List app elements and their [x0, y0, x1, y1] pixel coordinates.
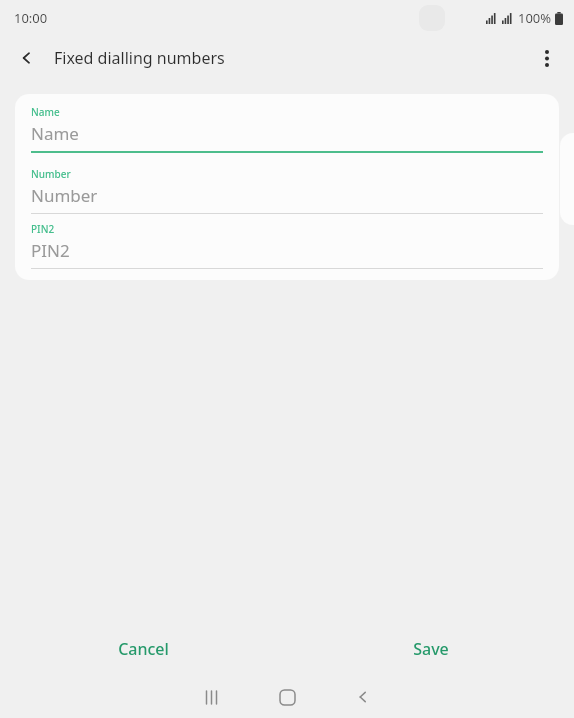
staticText: Cancel	[118, 638, 169, 660]
staticText: Name	[31, 122, 79, 145]
button[interactable]: Back	[8, 39, 46, 77]
button[interactable]: Save	[287, 622, 574, 676]
staticText: Number	[31, 184, 98, 207]
button[interactable]: Number	[31, 167, 543, 214]
staticText: 100%	[518, 9, 552, 27]
staticText: 10:00	[14, 9, 48, 27]
staticText: Number	[31, 167, 71, 181]
button[interactable]: Name	[31, 105, 543, 153]
staticText: Fixed dialling numbers	[54, 47, 225, 69]
staticText: Save	[413, 638, 449, 660]
staticText: PIN2	[31, 222, 55, 236]
button[interactable]: PIN2	[31, 222, 543, 269]
button[interactable]: Recents	[185, 676, 237, 718]
button[interactable]: Cancel	[0, 622, 287, 676]
staticText: Name	[31, 105, 60, 119]
staticText: PIN2	[31, 239, 70, 262]
button[interactable]: Back	[337, 676, 389, 718]
button[interactable]: Home	[261, 676, 313, 718]
button[interactable]: More options	[528, 39, 566, 77]
